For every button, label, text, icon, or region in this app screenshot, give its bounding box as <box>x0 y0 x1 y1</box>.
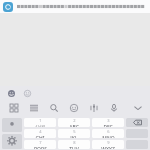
staticText: 2 <box>73 118 76 123</box>
staticText: 1 <box>39 118 42 123</box>
button[interactable] <box>0 0 150 13</box>
button[interactable]: Emoji <box>64 100 84 116</box>
button[interactable]: 8 <box>58 140 90 149</box>
staticText: PQRS <box>34 146 47 149</box>
staticText: 8 <box>73 140 76 145</box>
button[interactable]: 7 <box>24 140 56 149</box>
staticText: 6 <box>107 129 110 134</box>
button[interactable]: Search <box>44 100 64 116</box>
button[interactable]: Emoji suggestion <box>5 87 17 99</box>
staticText: GHI <box>35 135 45 138</box>
staticText: 7 <box>39 140 42 145</box>
staticText: 9 <box>107 140 110 145</box>
staticText: WXYZ <box>101 146 115 149</box>
staticText: DEF <box>103 124 113 127</box>
staticText: TUV <box>69 146 79 149</box>
button[interactable]: Text list <box>24 100 44 116</box>
staticText: MNO <box>102 135 115 138</box>
staticText: 4 <box>39 129 42 134</box>
button[interactable]: Backspace <box>126 118 148 127</box>
button[interactable]: Voice changer <box>84 100 104 116</box>
button[interactable]: 5 <box>58 129 90 138</box>
button[interactable]: Voice input <box>104 100 124 116</box>
staticText: 5 <box>73 129 76 134</box>
staticText: 3 <box>107 118 110 123</box>
staticText: ABC <box>69 124 79 127</box>
button[interactable]: 2 <box>58 118 90 127</box>
button[interactable]: Hide keyboard <box>130 100 146 116</box>
button[interactable]: 4 <box>24 129 56 138</box>
button[interactable]: 6 <box>92 129 124 138</box>
button[interactable]: 3 <box>92 118 124 127</box>
button[interactable]: Settings <box>2 134 22 149</box>
button[interactable]: 9 <box>92 140 124 149</box>
staticText: JKL <box>70 135 78 138</box>
button[interactable]: 1 <box>24 118 56 127</box>
staticText: 分词 <box>35 124 45 127</box>
button[interactable]: Emoji suggestion 2 <box>21 87 33 99</box>
button[interactable]: Symbols <box>2 118 22 132</box>
button[interactable]: Keyboard layouts <box>4 100 24 116</box>
